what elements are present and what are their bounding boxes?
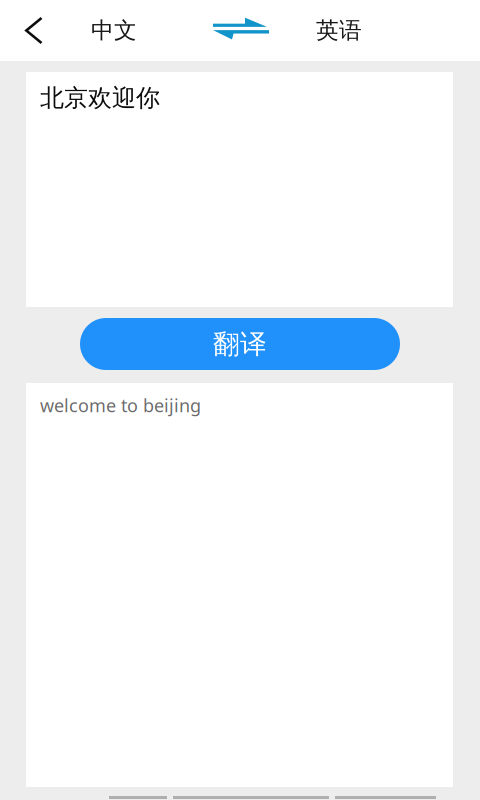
button[interactable]: 翻译 bbox=[80, 318, 400, 370]
button[interactable]: 北京欢迎你 bbox=[26, 72, 453, 307]
staticText: 翻译 bbox=[213, 327, 267, 361]
staticText: 英语 bbox=[316, 16, 362, 45]
button[interactable]: welcome to beijing bbox=[26, 383, 453, 787]
button[interactable]: 中文 bbox=[68, 0, 160, 61]
staticText: 北京欢迎你 bbox=[40, 83, 160, 113]
staticText: welcome to beijing bbox=[40, 393, 201, 417]
button[interactable]: Back bbox=[0, 0, 68, 61]
button[interactable]: 英语 bbox=[288, 0, 390, 61]
staticText: 中文 bbox=[91, 16, 137, 45]
button[interactable]: Swap languages bbox=[160, 0, 288, 61]
